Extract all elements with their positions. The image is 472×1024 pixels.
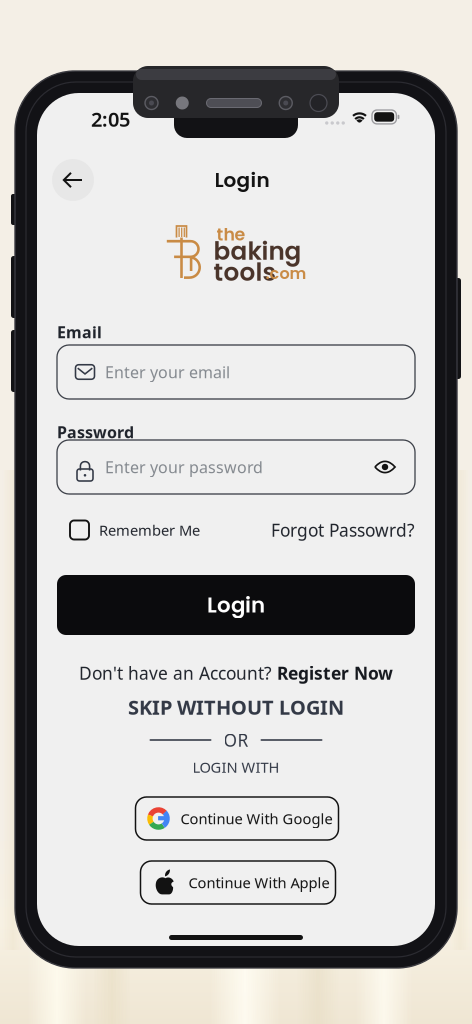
button[interactable]: Register Now bbox=[277, 661, 393, 684]
staticText: Remember Me bbox=[99, 520, 200, 540]
staticText: OR bbox=[223, 728, 248, 751]
staticText: SKIP WITHOUT LOGIN bbox=[128, 694, 344, 720]
button[interactable]: Back bbox=[52, 159, 94, 201]
button[interactable]: Continue With Google bbox=[135, 797, 338, 840]
staticText: Login bbox=[214, 166, 269, 194]
staticText: LOGIN WITH bbox=[192, 757, 279, 777]
staticText: baking bbox=[213, 234, 301, 268]
staticText: Password bbox=[57, 421, 134, 443]
staticText: Continue With Apple bbox=[188, 873, 329, 892]
button[interactable]: Login bbox=[57, 575, 415, 635]
button[interactable]: SKIP WITHOUT LOGIN bbox=[37, 695, 435, 719]
staticText: Continue With Google bbox=[180, 809, 332, 828]
staticText: Don't have an Account? bbox=[79, 661, 272, 684]
staticText: Enter your password bbox=[105, 456, 263, 478]
button[interactable]: Continue With Apple bbox=[140, 861, 335, 904]
button[interactable]: Show password bbox=[374, 459, 396, 475]
staticText: Email bbox=[57, 321, 102, 343]
staticText: tools bbox=[213, 255, 275, 289]
staticText: the bbox=[216, 222, 245, 247]
staticText: Login bbox=[207, 590, 265, 620]
staticText: .com bbox=[265, 262, 306, 285]
button[interactable]: Forgot Passowrd? bbox=[265, 517, 415, 543]
staticText: Enter your email bbox=[105, 361, 230, 383]
staticText: Register Now bbox=[277, 661, 393, 684]
staticText: Forgot Passowrd? bbox=[271, 518, 415, 541]
staticText: 2:05 bbox=[91, 106, 130, 132]
button[interactable]: Remember Me bbox=[70, 517, 222, 543]
